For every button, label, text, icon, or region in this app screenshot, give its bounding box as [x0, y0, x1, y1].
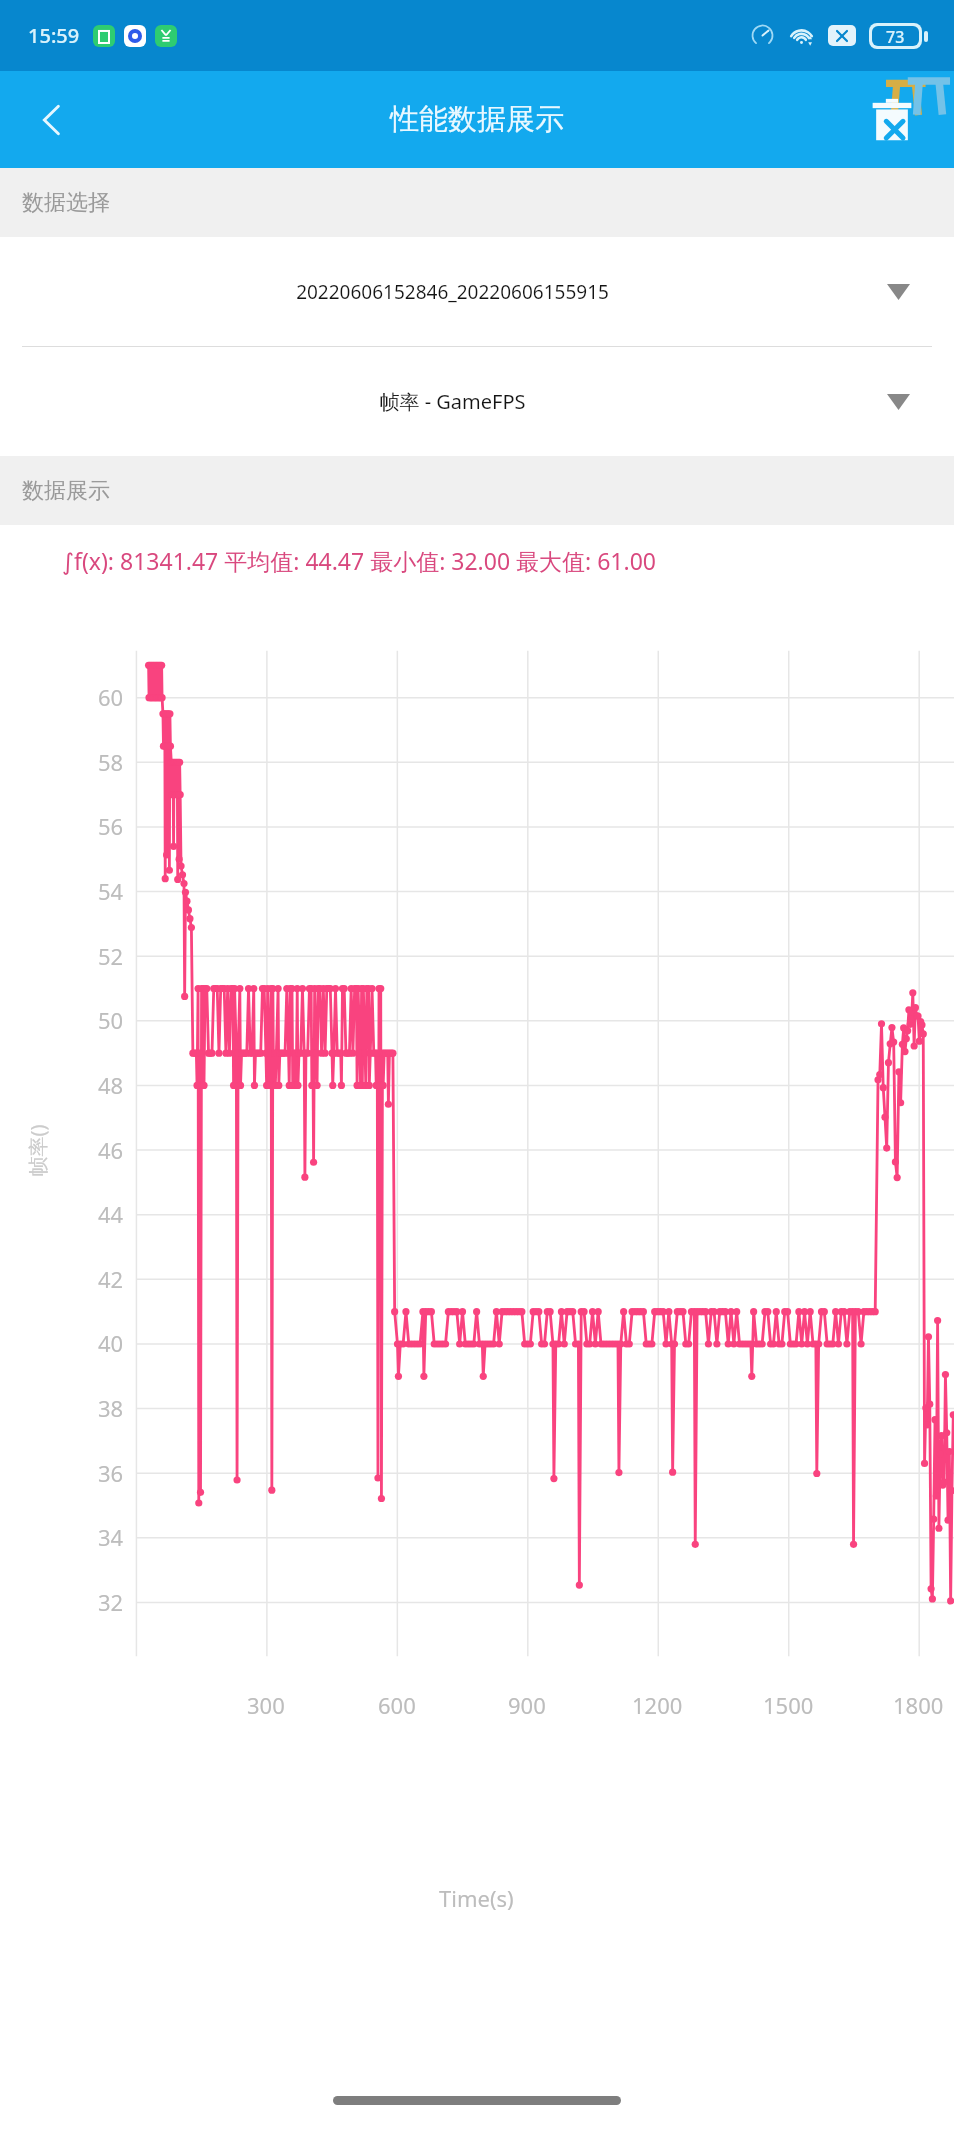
staticText: 数据选择	[22, 189, 110, 217]
staticText: 73	[886, 26, 905, 46]
staticText: 900	[508, 1690, 546, 1720]
staticText: 60	[98, 682, 124, 712]
staticText: 帧率()	[23, 1124, 50, 1176]
staticText: 1800	[893, 1690, 944, 1720]
staticText: 48	[98, 1070, 124, 1100]
staticText: 52	[98, 941, 124, 971]
button[interactable]: Back	[20, 88, 84, 152]
staticText: 40	[98, 1328, 124, 1358]
staticText: 36	[98, 1458, 124, 1488]
staticText: 600	[378, 1690, 416, 1720]
staticText: Time(s)	[439, 1883, 514, 1913]
staticText: 44	[98, 1199, 124, 1229]
staticText: 38	[98, 1393, 124, 1423]
staticText: 34	[98, 1522, 124, 1552]
staticText: 1500	[763, 1690, 814, 1720]
staticText: 54	[98, 876, 124, 906]
staticText: 20220606152846_20220606155915	[296, 279, 609, 305]
staticText: 32	[98, 1587, 124, 1617]
staticText: 300	[247, 1690, 285, 1720]
staticText: 性能数据展示	[390, 101, 564, 138]
staticText: 58	[98, 747, 124, 777]
staticText: 50	[98, 1005, 124, 1035]
staticText: 42	[98, 1264, 124, 1294]
staticText: ∫f(x): 81341.47 平均值: 44.47 最小值: 32.00 最大…	[62, 545, 656, 576]
button[interactable]: 20220606152846_20220606155915	[0, 237, 954, 346]
staticText: 56	[98, 811, 124, 841]
staticText: 数据展示	[22, 477, 110, 505]
button[interactable]: 帧率 - GameFPS	[0, 347, 954, 456]
staticText: 帧率 - GameFPS	[379, 388, 526, 415]
staticText: 15:59	[28, 22, 80, 49]
button[interactable]: Delete	[860, 88, 924, 152]
staticText: 1200	[632, 1690, 683, 1720]
staticText: 46	[98, 1135, 124, 1165]
